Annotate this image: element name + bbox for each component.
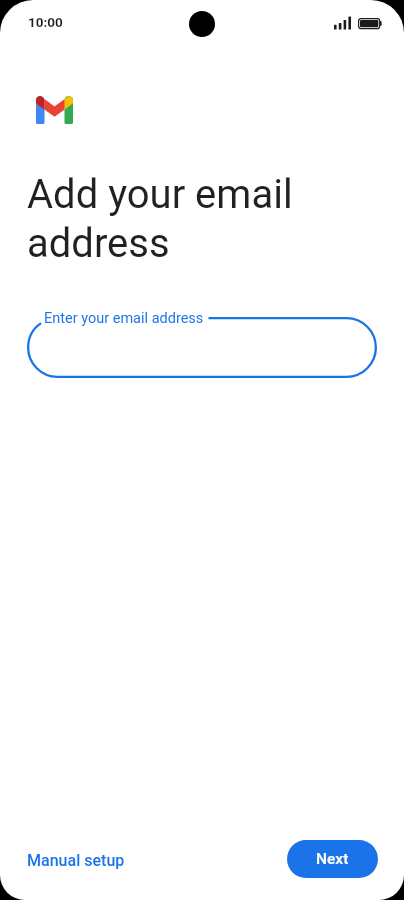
staticText: Next — [316, 850, 349, 868]
button[interactable]: Enter your email address — [27, 317, 377, 378]
button[interactable]: Manual setup — [27, 851, 125, 870]
staticText: Add your email address — [27, 171, 293, 267]
staticText: Manual setup — [27, 851, 125, 870]
button[interactable]: Next — [287, 840, 378, 878]
staticText: 10:00 — [28, 14, 63, 30]
staticText: Enter your email address — [44, 310, 204, 327]
